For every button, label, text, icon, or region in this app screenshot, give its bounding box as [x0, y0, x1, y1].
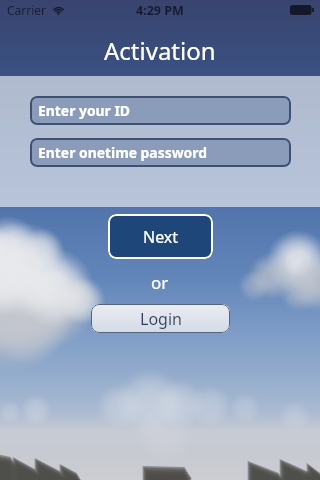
- staticText: Enter onetime password: [38, 143, 207, 162]
- staticText: or: [151, 271, 169, 294]
- button[interactable]: Enter your ID: [30, 96, 291, 125]
- staticText: Carrier: [7, 2, 47, 18]
- staticText: Activation: [104, 34, 216, 67]
- staticText: Next: [143, 226, 179, 248]
- staticText: Enter your ID: [38, 101, 130, 120]
- button[interactable]: Enter onetime password: [30, 138, 291, 167]
- staticText: Login: [140, 308, 182, 330]
- button[interactable]: Next: [108, 214, 213, 259]
- button[interactable]: Login: [91, 304, 230, 333]
- staticText: 4:29 PM: [136, 2, 184, 19]
